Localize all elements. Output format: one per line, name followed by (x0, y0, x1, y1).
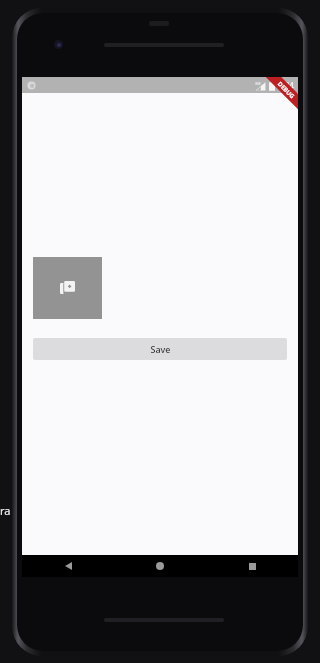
staticText: DEBUG (276, 80, 296, 100)
staticText: Save (150, 343, 171, 355)
button[interactable]: Home (114, 555, 206, 577)
button[interactable]: Back (22, 555, 114, 577)
button[interactable]: Add image (33, 257, 102, 319)
button[interactable]: Save (33, 338, 287, 360)
staticText: 6:34 (278, 80, 294, 91)
button[interactable]: Recent apps (206, 555, 298, 577)
staticText: ra (0, 503, 11, 518)
